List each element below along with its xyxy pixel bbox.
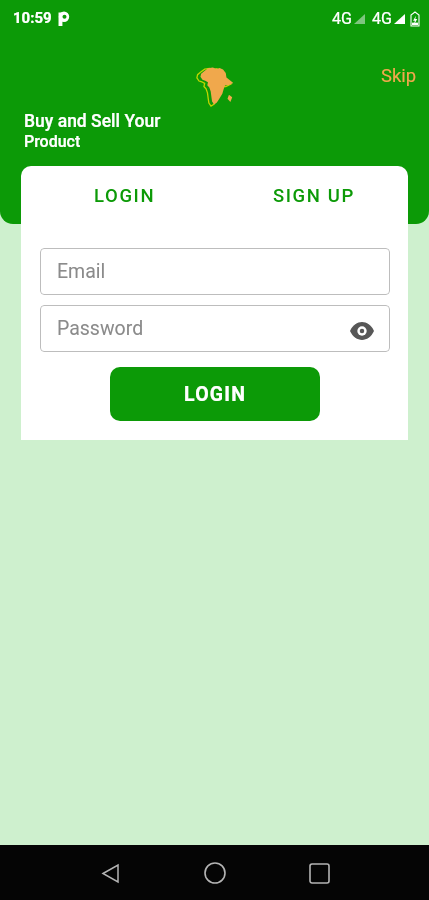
staticText: Skip [381,65,417,87]
staticText: Email [57,260,106,283]
button[interactable]: Back [88,851,132,895]
staticText: LOGIN [94,185,156,207]
button[interactable]: LOGIN [110,367,320,421]
staticText: 4G [372,9,392,28]
button[interactable]: SIGN UP [219,177,408,215]
staticText: Buy and Sell Your [24,111,161,132]
button[interactable]: Skip [377,61,421,91]
staticText: 4G [332,9,352,28]
button[interactable]: Recent apps [297,851,341,895]
button[interactable]: Show password [347,316,377,346]
button[interactable]: Email [40,248,390,295]
button[interactable]: Home [193,851,237,895]
staticText: Password [57,317,144,340]
staticText: 10:59 [13,9,52,27]
staticText: LOGIN [184,383,247,406]
button[interactable]: LOGIN [31,177,219,215]
staticText: SIGN UP [273,185,355,207]
staticText: Product [24,132,81,151]
button[interactable]: Password [40,305,390,352]
